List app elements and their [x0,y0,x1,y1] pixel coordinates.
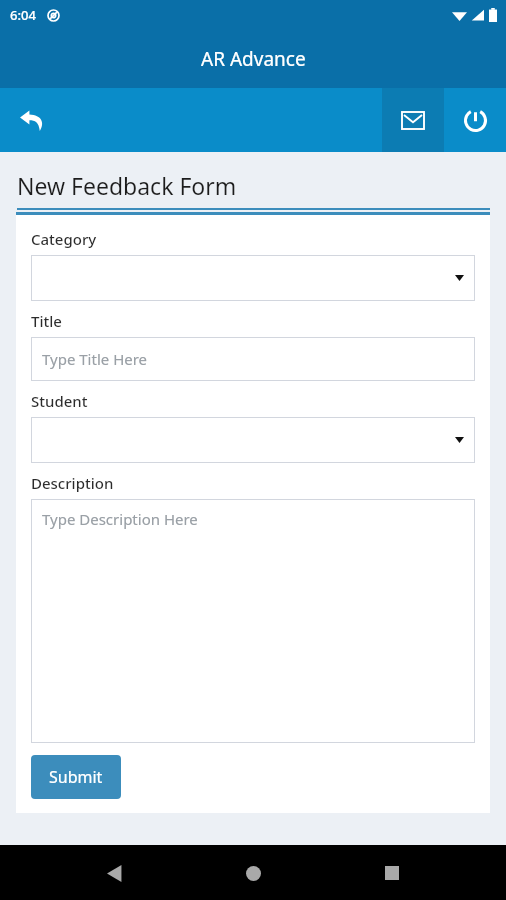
button[interactable]: Type Description Here [31,499,475,743]
button[interactable]: Back [91,849,139,897]
button[interactable]: Logout [444,88,506,152]
staticText: New Feedback Form [17,170,237,201]
staticText: Student [31,391,88,411]
button[interactable]: Back [0,88,64,152]
staticText: 6:04 [10,6,36,24]
button[interactable]: Recents [368,849,416,897]
staticText: Description [31,473,114,493]
staticText: Type Description Here [42,509,198,529]
button[interactable]: Home [229,849,277,897]
staticText: Category [31,229,97,249]
staticText: Title [31,311,62,331]
button[interactable]: Messages [382,88,444,152]
staticText: Submit [49,766,103,788]
staticText: AR Advance [201,46,306,72]
button[interactable]: Type Title Here [31,337,475,381]
staticText: Type Title Here [42,349,148,369]
button[interactable] [31,417,475,463]
button[interactable]: Submit [31,755,121,799]
button[interactable] [31,255,475,301]
